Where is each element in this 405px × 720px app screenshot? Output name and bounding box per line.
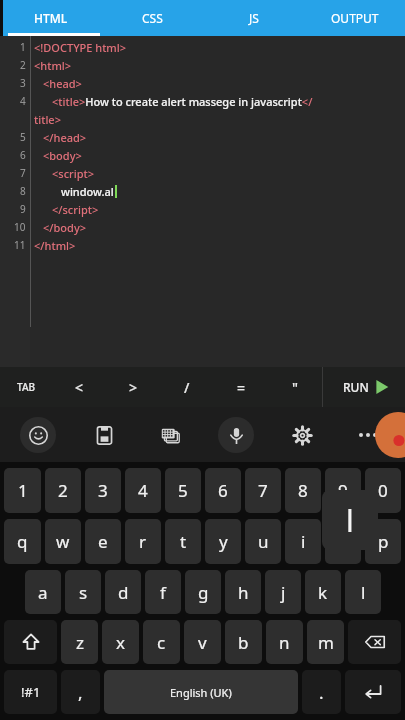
button[interactable]: j xyxy=(265,570,301,614)
button[interactable]: u xyxy=(245,519,281,564)
button[interactable]: 9 xyxy=(325,468,361,513)
button[interactable]: Settings xyxy=(269,407,335,462)
staticText: English (UK) xyxy=(170,685,232,700)
button[interactable]: TAB xyxy=(0,367,53,407)
button[interactable]: d xyxy=(105,570,141,614)
button[interactable]: i xyxy=(285,519,321,564)
staticText: 8 xyxy=(20,184,26,198)
button[interactable]: Backspace xyxy=(348,620,401,664)
staticText: OUTPUT xyxy=(331,10,379,26)
button[interactable]: , xyxy=(61,670,100,714)
staticText: . xyxy=(319,681,324,704)
button[interactable]: e xyxy=(85,519,121,564)
button[interactable]: HTML xyxy=(0,0,102,36)
staticText: 9 xyxy=(20,202,26,216)
button[interactable]: n xyxy=(266,620,303,664)
button[interactable]: More options xyxy=(335,407,401,462)
staticText: </body> xyxy=(43,220,86,235)
button[interactable]: 2 xyxy=(45,468,81,513)
staticText: RUN xyxy=(343,379,369,395)
button[interactable]: > xyxy=(106,367,160,407)
button[interactable]: g xyxy=(185,570,221,614)
button[interactable]: !#1 xyxy=(4,670,57,714)
button[interactable]: 4 xyxy=(125,468,161,513)
staticText: m xyxy=(318,631,334,654)
staticText: <title>How to create alert massege in ja… xyxy=(52,94,313,109)
button[interactable]: y xyxy=(205,519,241,564)
staticText: 5 xyxy=(20,130,26,144)
staticText: / xyxy=(184,378,190,397)
staticText: <script> xyxy=(52,166,94,181)
button[interactable]: 6 xyxy=(205,468,241,513)
button[interactable]: Enter xyxy=(345,670,401,714)
staticText: </head> xyxy=(43,130,87,145)
button[interactable]: 3 xyxy=(85,468,121,513)
staticText: <head> xyxy=(43,76,82,91)
button[interactable]: 1 xyxy=(4,468,41,513)
button[interactable]: k xyxy=(305,570,341,614)
button[interactable]: = xyxy=(214,367,268,407)
button[interactable]: f xyxy=(145,570,181,614)
staticText: u xyxy=(258,530,269,553)
button[interactable]: v xyxy=(184,620,221,664)
staticText: 2 xyxy=(58,479,68,502)
button[interactable]: " xyxy=(268,367,322,407)
button[interactable]: . xyxy=(302,670,341,714)
button[interactable]: z xyxy=(61,620,98,664)
button[interactable]: RUN xyxy=(343,379,389,395)
staticText: " xyxy=(292,378,299,397)
button[interactable]: OUTPUT xyxy=(304,0,405,36)
button[interactable]: English (UK) xyxy=(104,670,298,714)
staticText: 4 xyxy=(138,479,148,502)
button[interactable]: m xyxy=(307,620,344,664)
button[interactable]: < xyxy=(53,367,106,407)
button[interactable]: o xyxy=(325,519,361,564)
button[interactable]: c xyxy=(143,620,180,664)
button[interactable]: p xyxy=(365,519,401,564)
button[interactable]: Voice input xyxy=(203,407,269,462)
staticText: 3 xyxy=(20,76,26,90)
staticText: d xyxy=(118,581,129,604)
staticText: title> xyxy=(34,112,61,127)
staticText: b xyxy=(238,631,249,654)
staticText: v xyxy=(198,631,207,654)
staticText: 1 xyxy=(18,479,28,502)
staticText: 0 xyxy=(378,479,388,502)
staticText: 1 xyxy=(20,40,26,54)
staticText: f xyxy=(160,581,166,604)
button[interactable]: Clipboard xyxy=(71,407,137,462)
button[interactable]: w xyxy=(45,519,81,564)
staticText: 10 xyxy=(14,220,26,234)
button[interactable]: r xyxy=(125,519,161,564)
button[interactable]: s xyxy=(65,570,101,614)
button[interactable]: q xyxy=(4,519,41,564)
button[interactable]: Switch keyboard xyxy=(137,407,203,462)
staticText: < xyxy=(75,378,84,397)
staticText: 11 xyxy=(14,238,26,252)
staticText: s xyxy=(79,581,88,604)
button[interactable]: b xyxy=(225,620,262,664)
button[interactable]: a xyxy=(25,570,61,614)
button[interactable]: JS xyxy=(203,0,304,36)
staticText: n xyxy=(279,631,290,654)
staticText: </script> xyxy=(52,202,99,217)
staticText: t xyxy=(180,530,187,553)
button[interactable]: 0 xyxy=(365,468,401,513)
button[interactable]: l xyxy=(345,570,381,614)
button[interactable]: / xyxy=(160,367,214,407)
staticText: p xyxy=(378,530,389,553)
button[interactable]: x xyxy=(102,620,139,664)
button[interactable]: CSS xyxy=(102,0,203,36)
staticText: 2 xyxy=(20,58,26,72)
button[interactable]: 8 xyxy=(285,468,321,513)
button[interactable]: Shift xyxy=(4,620,57,664)
staticText: <!DOCTYPE html> xyxy=(34,40,127,55)
staticText: k xyxy=(318,581,328,604)
button[interactable]: t xyxy=(165,519,201,564)
button[interactable]: Emoji xyxy=(4,407,71,462)
staticText: r xyxy=(139,530,147,553)
staticText: l xyxy=(361,581,366,604)
button[interactable]: h xyxy=(225,570,261,614)
button[interactable]: 7 xyxy=(245,468,281,513)
button[interactable]: 5 xyxy=(165,468,201,513)
